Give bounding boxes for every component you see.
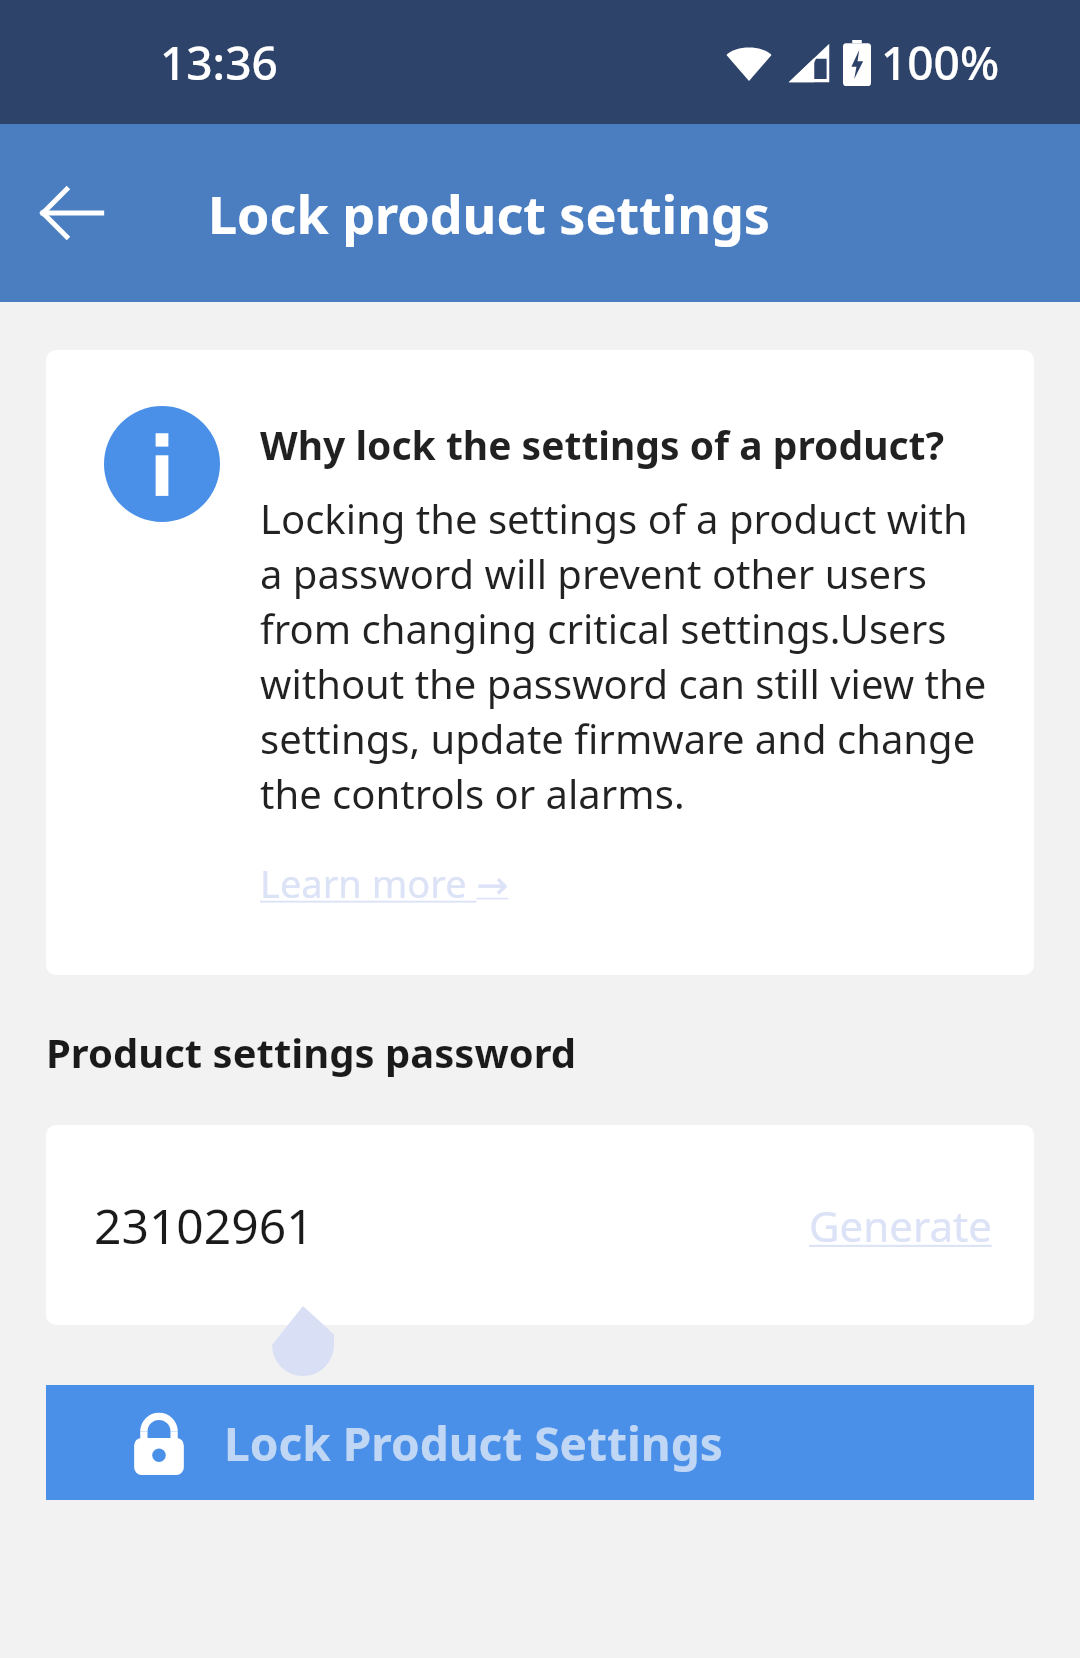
staticText: 100% (881, 31, 1000, 94)
staticText: Product settings password (46, 1025, 576, 1079)
button[interactable]: Generate (809, 1197, 992, 1254)
button[interactable]: 23102961 (46, 1125, 1034, 1325)
button[interactable]: Back (22, 163, 122, 263)
button[interactable]: Learn more → (260, 857, 509, 909)
staticText: Generate (809, 1197, 992, 1254)
staticText: Why lock the settings of a product? (260, 418, 945, 471)
staticText: 23102961 (94, 1193, 314, 1258)
staticText: Learn more → (260, 857, 509, 909)
staticText: Locking the settings of a product with a… (260, 491, 1000, 821)
staticText: Lock Product Settings (224, 1412, 723, 1475)
button[interactable]: Why lock the settings of a product? (46, 350, 1034, 975)
staticText: 13:36 (160, 31, 278, 94)
staticText: Lock product settings (208, 178, 770, 249)
button[interactable]: Lock Product Settings (46, 1385, 1034, 1500)
